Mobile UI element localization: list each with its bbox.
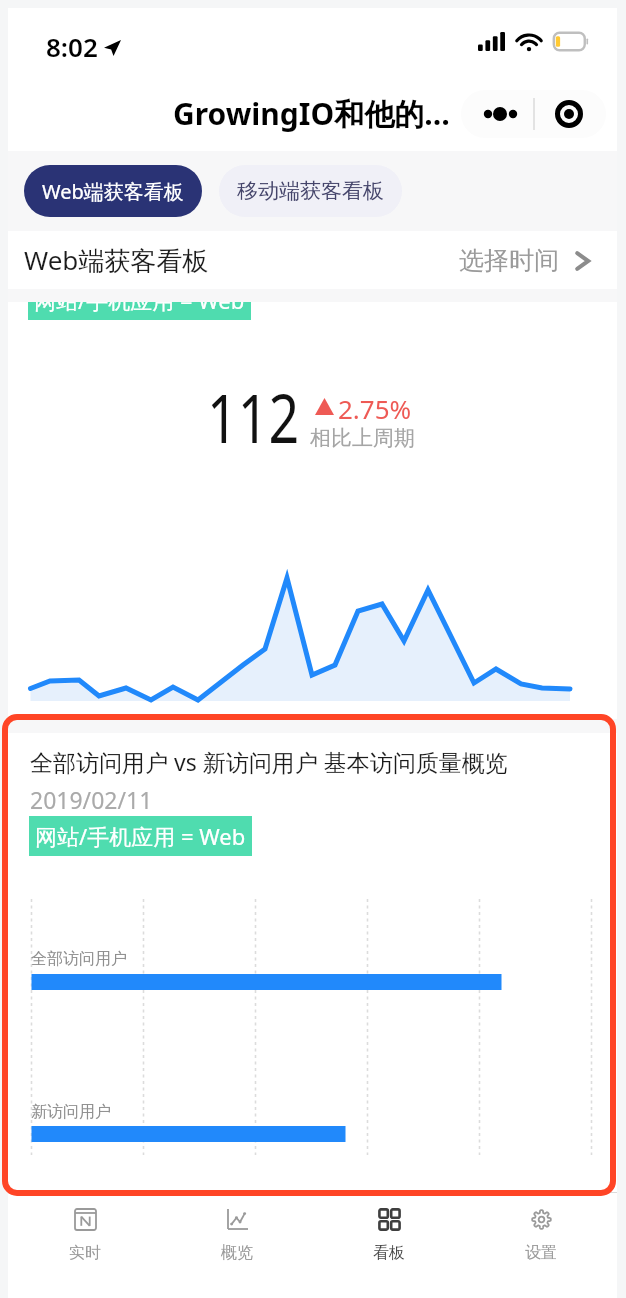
button[interactable]: 网站/手机应用 = Web [8, 302, 617, 719]
staticText: 8:02 [46, 29, 98, 64]
staticText: 实时 [69, 1243, 101, 1263]
staticText: 概览 [221, 1243, 253, 1263]
button[interactable]: 设置 [465, 1209, 617, 1263]
staticText: Web端获客看板 [42, 178, 184, 205]
staticText: 选择时间 [459, 245, 559, 276]
staticText: 112 [207, 370, 299, 463]
staticText: 全部访问用户 [31, 949, 127, 969]
staticText: 2019/02/11 [30, 784, 153, 815]
staticText: 新访问用户 [31, 1102, 111, 1122]
staticText: 设置 [525, 1243, 557, 1263]
staticText: 网站/手机应用 = Web [34, 302, 245, 315]
staticText: 网站/手机应用 = Web [35, 821, 246, 851]
staticText: GrowingIO和他的… [173, 93, 450, 134]
button[interactable]: More options and close mini program [461, 90, 606, 138]
button[interactable]: 移动端获客看板 [219, 165, 402, 217]
button[interactable]: 选择时间 [459, 245, 592, 276]
staticText: 全部访问用户 vs 新访问用户 基本访问质量概览 [30, 746, 508, 777]
staticText: 看板 [373, 1243, 405, 1263]
staticText: 移动端获客看板 [237, 178, 384, 204]
staticText: Web端获客看板 [24, 242, 209, 278]
button[interactable]: 看板 [313, 1209, 465, 1263]
button[interactable]: 概览 [161, 1209, 313, 1263]
button[interactable]: 全部访问用户 vs 新访问用户 基本访问质量概览 [8, 733, 617, 1192]
button[interactable]: 实时 [9, 1209, 161, 1263]
staticText: 2.75% [338, 391, 412, 426]
button[interactable]: Web端获客看板 [24, 165, 202, 217]
staticText: 相比上周期 [310, 425, 415, 451]
